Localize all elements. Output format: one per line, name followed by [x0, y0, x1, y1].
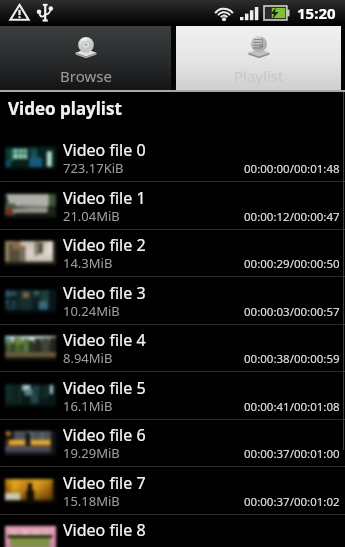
- staticText: 16.1MiB: [63, 397, 113, 415]
- staticText: 00:00:12/00:00:47: [244, 209, 340, 225]
- staticText: 00:00:37/00:01:02: [244, 494, 340, 510]
- button[interactable]: Video file 6: [0, 419, 345, 466]
- staticText: Playlist: [234, 66, 284, 86]
- staticText: 723.17KiB: [63, 159, 124, 177]
- button[interactable]: Browse: [0, 26, 171, 90]
- staticText: 8.94MiB: [63, 349, 113, 367]
- staticText: Video file 1: [63, 187, 146, 209]
- button[interactable]: Video file 5: [0, 372, 345, 419]
- staticText: 15:20: [297, 3, 336, 23]
- staticText: 21.04MiB: [63, 207, 120, 225]
- staticText: Video file 2: [63, 234, 146, 256]
- button[interactable]: Video file 8: [0, 514, 345, 547]
- staticText: Video file 7: [63, 472, 146, 494]
- staticText: 00:00:29/00:00:50: [244, 256, 340, 272]
- staticText: Video file 4: [63, 329, 146, 351]
- staticText: 00:00:00/00:01:48: [244, 161, 340, 177]
- staticText: Browse: [60, 66, 112, 86]
- staticText: 00:00:37/00:01:00: [244, 446, 340, 462]
- button[interactable]: Video file 1: [0, 182, 345, 229]
- staticText: Video file 6: [63, 424, 146, 446]
- button[interactable]: Playlist: [176, 26, 341, 90]
- button[interactable]: Video file 2: [0, 229, 345, 276]
- staticText: 14.3MiB: [63, 254, 113, 272]
- staticText: 00:00:41/00:01:08: [244, 399, 340, 415]
- button[interactable]: Video file 3: [0, 277, 345, 324]
- staticText: 10.24MiB: [63, 302, 120, 320]
- staticText: 00:00:38/00:00:59: [244, 351, 340, 367]
- staticText: Video file 3: [63, 282, 146, 304]
- staticText: 19.29MiB: [63, 444, 120, 462]
- staticText: 15.18MiB: [63, 492, 120, 510]
- staticText: Video playlist: [8, 97, 122, 120]
- staticText: Video file 0: [63, 139, 146, 161]
- button[interactable]: Video file 0: [0, 134, 345, 181]
- button[interactable]: Video file 4: [0, 324, 345, 371]
- staticText: 00:00:03/00:00:57: [244, 304, 340, 320]
- staticText: Video file 8: [63, 519, 146, 541]
- staticText: Video file 5: [63, 377, 146, 399]
- button[interactable]: Video file 7: [0, 467, 345, 514]
